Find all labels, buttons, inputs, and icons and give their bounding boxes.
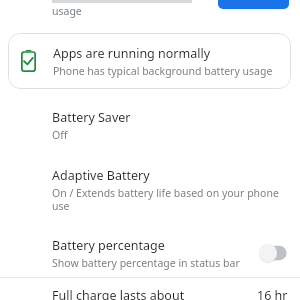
button[interactable]: Battery percentage <box>0 230 300 276</box>
button[interactable]: Battery healthy <box>8 33 291 89</box>
staticText: 16 hr <box>257 287 288 300</box>
button[interactable]: Battery Saver <box>0 104 300 150</box>
staticText: On / Extends battery life based on your … <box>52 186 288 213</box>
other: Battery healthy <box>17 50 39 72</box>
staticText: Battery Saver <box>52 109 131 126</box>
button[interactable]: Action <box>218 0 289 9</box>
staticText: Battery percentage <box>52 237 165 254</box>
staticText: Adaptive Battery <box>52 167 150 184</box>
button[interactable]: usage <box>0 0 300 22</box>
staticText: usage <box>52 4 82 18</box>
button[interactable]: Adaptive Battery <box>0 162 300 222</box>
staticText: Phone has typical background battery usa… <box>53 64 273 78</box>
staticText: Apps are running normally <box>53 45 211 62</box>
staticText: Full charge lasts about <box>52 287 257 300</box>
staticText: Off <box>52 128 68 142</box>
button[interactable]: Battery percentage toggle <box>254 242 290 264</box>
staticText: Show battery percentage in status bar <box>52 256 240 270</box>
button[interactable]: Full charge lasts about <box>0 278 300 300</box>
